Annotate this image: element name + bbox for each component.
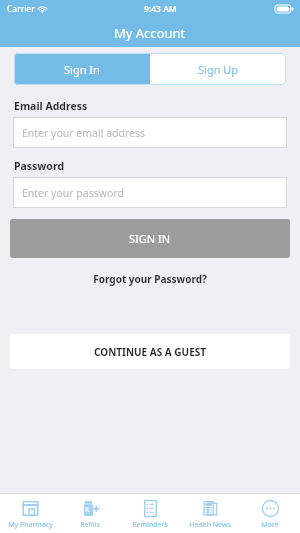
staticText: Forgot your Password? xyxy=(93,272,207,286)
staticText: Reminders xyxy=(132,520,168,530)
button[interactable]: Sign In xyxy=(14,53,150,85)
button[interactable]: SIGN IN xyxy=(10,219,290,258)
staticText: Sign In xyxy=(64,62,100,77)
button[interactable]: Enter your password xyxy=(13,177,287,208)
button[interactable]: Forgot your Password? xyxy=(0,272,300,286)
staticText: 9:43 AM xyxy=(144,3,177,15)
staticText: My Account xyxy=(114,24,186,42)
button[interactable]: More xyxy=(240,495,300,533)
button[interactable]: Health News xyxy=(180,495,240,533)
staticText: SIGN IN xyxy=(129,231,171,246)
staticText: Refills xyxy=(80,520,100,530)
staticText: CONTINUE AS A GUEST xyxy=(94,345,207,359)
staticText: Enter your password xyxy=(22,186,124,200)
button[interactable]: Reminders xyxy=(120,495,180,533)
staticText: Email Address xyxy=(14,99,88,113)
button[interactable]: Sign Up xyxy=(150,53,286,85)
button[interactable]: Enter your email address xyxy=(13,117,287,148)
staticText: Carrier xyxy=(7,3,35,15)
staticText: Sign Up xyxy=(198,62,239,77)
button[interactable]: My Pharmacy xyxy=(0,495,60,533)
button[interactable]: Refills xyxy=(60,495,120,533)
staticText: More xyxy=(261,520,279,530)
staticText: Password xyxy=(14,159,65,173)
staticText: Health News xyxy=(189,520,231,530)
button[interactable]: CONTINUE AS A GUEST xyxy=(10,334,290,369)
staticText: Enter your email address xyxy=(22,126,146,140)
staticText: My Pharmacy xyxy=(8,520,53,530)
